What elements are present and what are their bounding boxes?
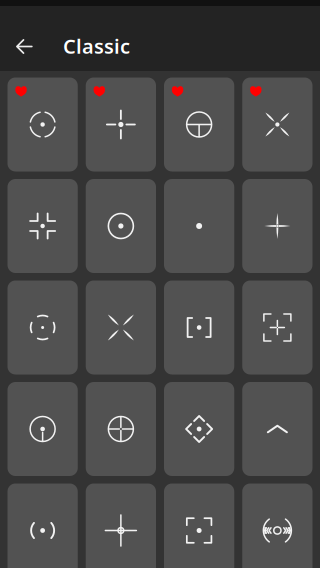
button[interactable]: Reticle style 12: [242, 280, 312, 374]
staticText: Classic: [63, 33, 130, 59]
button[interactable]: Reticle style 17: [7, 483, 78, 568]
button[interactable]: Reticle style 15: [164, 382, 234, 476]
button[interactable]: Reticle style 8: [242, 179, 312, 273]
button[interactable]: Reticle style 14: [86, 382, 156, 476]
button[interactable]: Reticle style 11: [164, 280, 234, 374]
button[interactable]: Reticle style 10: [86, 280, 156, 374]
button[interactable]: Reticle style 16: [242, 382, 312, 476]
button[interactable]: Reticle style 9: [7, 280, 78, 374]
button[interactable]: Reticle style 5: [7, 179, 78, 273]
button[interactable]: Reticle style 7: [164, 179, 234, 273]
button[interactable]: Reticle style 1: [7, 77, 78, 171]
button[interactable]: Reticle style 13: [7, 382, 78, 476]
button[interactable]: Reticle style 19: [164, 483, 234, 568]
button[interactable]: Reticle style 2: [86, 77, 156, 171]
button[interactable]: Reticle style 20: [242, 483, 312, 568]
button[interactable]: Reticle style 18: [86, 483, 156, 568]
button[interactable]: Reticle style 3: [164, 77, 234, 171]
button[interactable]: Back: [8, 26, 41, 66]
button[interactable]: Reticle style 4: [242, 77, 312, 171]
button[interactable]: Reticle style 6: [86, 179, 156, 273]
